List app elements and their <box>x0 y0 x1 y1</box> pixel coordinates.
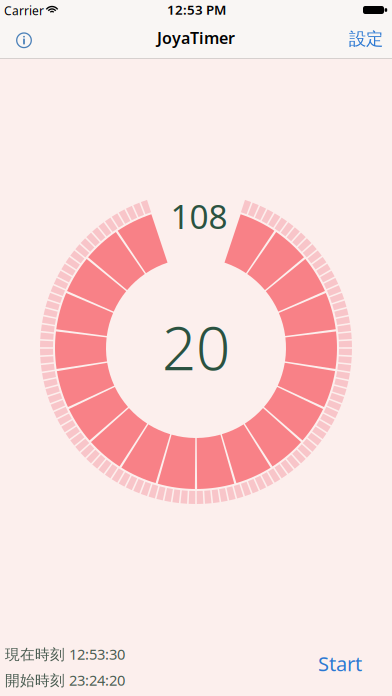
staticText: 開始時刻 23:24:20 <box>5 670 125 690</box>
staticText: JoyaTimer <box>157 27 235 48</box>
button[interactable]: Start <box>310 644 370 683</box>
staticText: 12:53 PM <box>167 1 226 18</box>
staticText: 20 <box>162 307 230 387</box>
staticText: Start <box>318 650 362 677</box>
button[interactable]: 設定 <box>343 20 389 58</box>
staticText: 現在時刻 12:53:30 <box>5 644 125 664</box>
staticText: Carrier <box>4 2 44 18</box>
button[interactable]: About <box>12 28 36 52</box>
staticText: 108 <box>170 194 227 238</box>
staticText: 設定 <box>349 28 383 50</box>
